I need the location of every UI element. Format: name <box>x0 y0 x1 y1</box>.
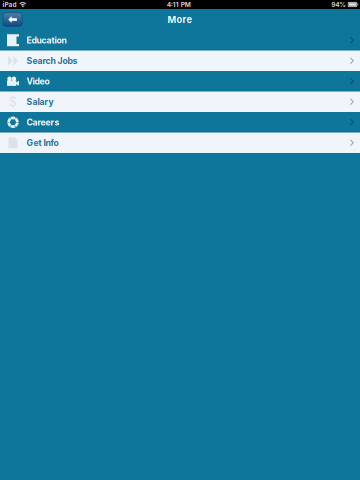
button[interactable]: Education <box>0 30 360 50</box>
staticText: More <box>167 14 192 25</box>
staticText: $ <box>8 94 17 110</box>
button[interactable]: Get Info <box>0 132 360 153</box>
staticText: Careers <box>26 117 59 127</box>
staticText: Salary <box>26 96 53 107</box>
staticText: Search Jobs <box>26 55 77 66</box>
button[interactable]: Video <box>0 71 360 91</box>
staticText: Education <box>26 35 66 45</box>
staticText: Get Info <box>26 137 58 148</box>
staticText: 4:11 PM <box>167 0 191 8</box>
button[interactable]: $ <box>0 91 360 112</box>
button[interactable]: Careers <box>0 112 360 132</box>
staticText: 94% <box>331 0 346 8</box>
button[interactable]: Back <box>3 13 22 26</box>
staticText: Video <box>26 76 49 86</box>
button[interactable]: Search Jobs <box>0 50 360 71</box>
staticText: iPad <box>2 0 16 8</box>
